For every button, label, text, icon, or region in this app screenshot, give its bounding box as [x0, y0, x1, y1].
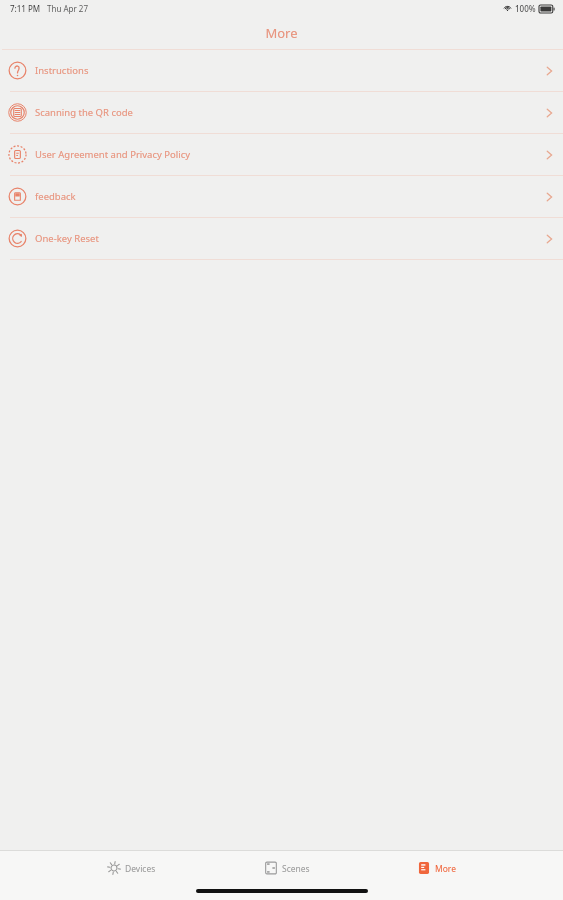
staticText: 100%	[515, 3, 536, 14]
button[interactable]: Instructions	[0, 50, 563, 91]
button[interactable]: User Agreement and Privacy Policy	[0, 134, 563, 175]
staticText: More	[265, 24, 298, 42]
button[interactable]: Scenes	[264, 851, 310, 900]
staticText: 7:11 PM	[10, 3, 41, 14]
staticText: One-key Reset	[35, 232, 99, 245]
staticText: Thu Apr 27	[47, 3, 88, 14]
staticText: Devices	[125, 863, 156, 875]
staticText: Scenes	[282, 863, 310, 875]
button[interactable]: Devices	[107, 851, 156, 900]
button[interactable]: Scanning the QR code	[0, 92, 563, 133]
staticText: User Agreement and Privacy Policy	[35, 148, 191, 161]
staticText: Instructions	[35, 64, 89, 77]
staticText: More	[435, 863, 456, 875]
button[interactable]: One-key Reset	[0, 218, 563, 259]
staticText: Scanning the QR code	[35, 106, 133, 119]
button[interactable]: More	[417, 851, 456, 900]
staticText: feedback	[35, 190, 76, 203]
button[interactable]: feedback	[0, 176, 563, 217]
